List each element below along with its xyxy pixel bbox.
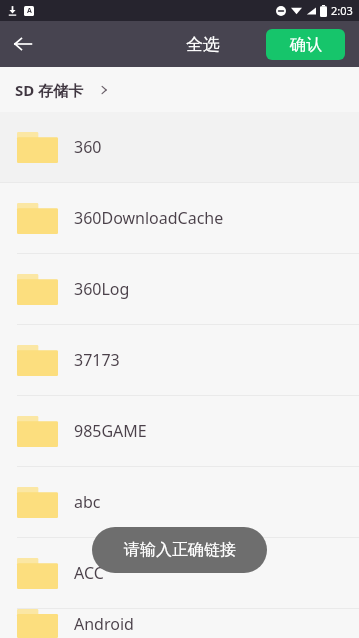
staticText: SD 存储卡 — [15, 80, 84, 100]
button[interactable]: 360Log — [0, 254, 359, 324]
button[interactable]: Back — [0, 21, 46, 67]
staticText: 360 — [74, 136, 102, 158]
button[interactable]: 确认 — [266, 29, 345, 60]
staticText: 37173 — [74, 349, 120, 371]
staticText: 2:03 — [331, 3, 353, 18]
button[interactable]: 985GAME — [0, 396, 359, 466]
staticText: 985GAME — [74, 420, 147, 442]
button[interactable]: ACC — [0, 538, 359, 608]
staticText: 请输入正确链接 — [124, 540, 236, 560]
button[interactable]: abc — [0, 467, 359, 537]
staticText: 360Log — [74, 278, 130, 300]
button[interactable]: 360DownloadCache — [0, 183, 359, 253]
staticText: ACC — [74, 562, 104, 584]
staticText: abc — [74, 491, 101, 513]
staticText: 全选 — [186, 34, 220, 55]
button[interactable]: 全选 — [172, 21, 234, 67]
button[interactable]: Android — [0, 609, 359, 638]
button[interactable]: SD 存储卡 — [15, 67, 359, 112]
button[interactable]: 360 — [0, 112, 359, 182]
staticText: Android — [74, 613, 134, 635]
staticText: 确认 — [290, 35, 322, 55]
staticText: 360DownloadCache — [74, 207, 224, 229]
staticText: A — [27, 6, 32, 16]
button[interactable]: 37173 — [0, 325, 359, 395]
